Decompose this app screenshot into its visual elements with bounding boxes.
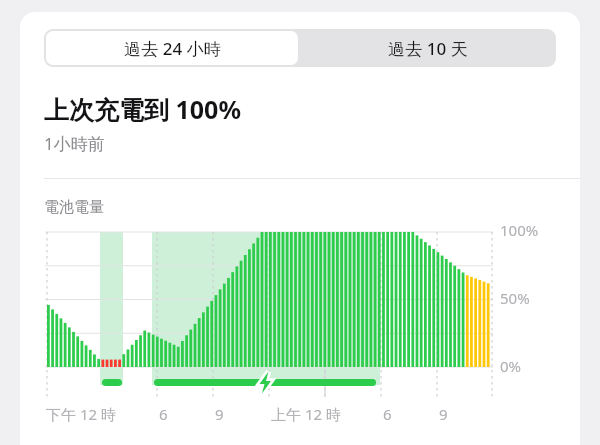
- staticText: 9: [215, 404, 224, 424]
- staticText: 過去 24 小時: [124, 37, 221, 60]
- staticText: 50%: [500, 288, 530, 308]
- staticText: 9: [439, 404, 448, 424]
- staticText: 電池電量: [44, 198, 104, 217]
- staticText: 下午 12 時: [46, 404, 116, 424]
- staticText: 1小時前: [44, 132, 105, 155]
- staticText: 6: [383, 404, 392, 424]
- staticText: 上次充電到 100%: [44, 92, 241, 126]
- staticText: 0%: [500, 356, 522, 376]
- button[interactable]: 過去 24 小時: [46, 31, 298, 65]
- staticText: 100%: [500, 220, 539, 240]
- staticText: 6: [159, 404, 168, 424]
- other: Battery level chart: [0, 0, 600, 445]
- staticText: 過去 10 天: [388, 37, 468, 60]
- button[interactable]: 過去 10 天: [300, 29, 556, 67]
- staticText: 上午 12 時: [271, 404, 341, 424]
